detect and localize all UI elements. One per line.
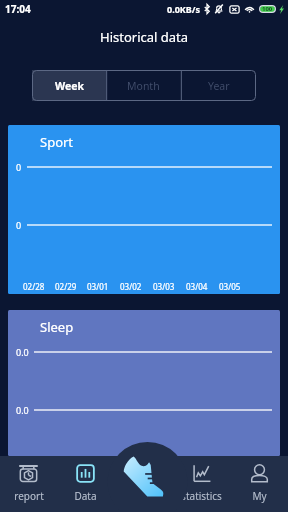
staticText: Year: [208, 79, 230, 93]
button[interactable]: Year: [181, 70, 256, 101]
staticText: statistics: [181, 489, 222, 503]
staticText: 0.0: [16, 404, 29, 416]
staticText: 0: [16, 161, 22, 173]
staticText: 03/02: [120, 281, 142, 292]
button[interactable]: Month: [106, 70, 181, 101]
button[interactable]: Week: [32, 70, 106, 101]
staticText: report: [14, 489, 44, 503]
staticText: 17:04: [5, 2, 31, 16]
button[interactable]: statistics: [172, 456, 230, 512]
button[interactable]: My: [230, 456, 288, 512]
staticText: Week: [55, 79, 84, 93]
staticText: 03/04: [186, 281, 208, 292]
button[interactable]: Sport: [8, 125, 280, 294]
button[interactable]: report: [0, 456, 57, 512]
staticText: Sleep: [40, 318, 74, 336]
staticText: 0.0: [16, 346, 29, 358]
staticText: Sport: [40, 133, 74, 151]
staticText: 0.0KB/s: [167, 3, 201, 15]
button[interactable]: Sleep: [8, 310, 280, 456]
staticText: 03/01: [87, 281, 109, 292]
staticText: 0: [16, 219, 22, 231]
staticText: 03/03: [153, 281, 175, 292]
staticText: Data: [74, 489, 97, 503]
staticText: 02/29: [55, 281, 77, 292]
staticText: Month: [127, 79, 160, 93]
staticText: My: [252, 489, 267, 503]
staticText: 02/28: [23, 281, 45, 292]
staticText: Historical data: [100, 28, 189, 46]
staticText: 100: [262, 5, 273, 13]
button[interactable]: Start workout: [123, 456, 165, 497]
staticText: 03/05: [219, 281, 241, 292]
button[interactable]: Data: [57, 456, 114, 512]
